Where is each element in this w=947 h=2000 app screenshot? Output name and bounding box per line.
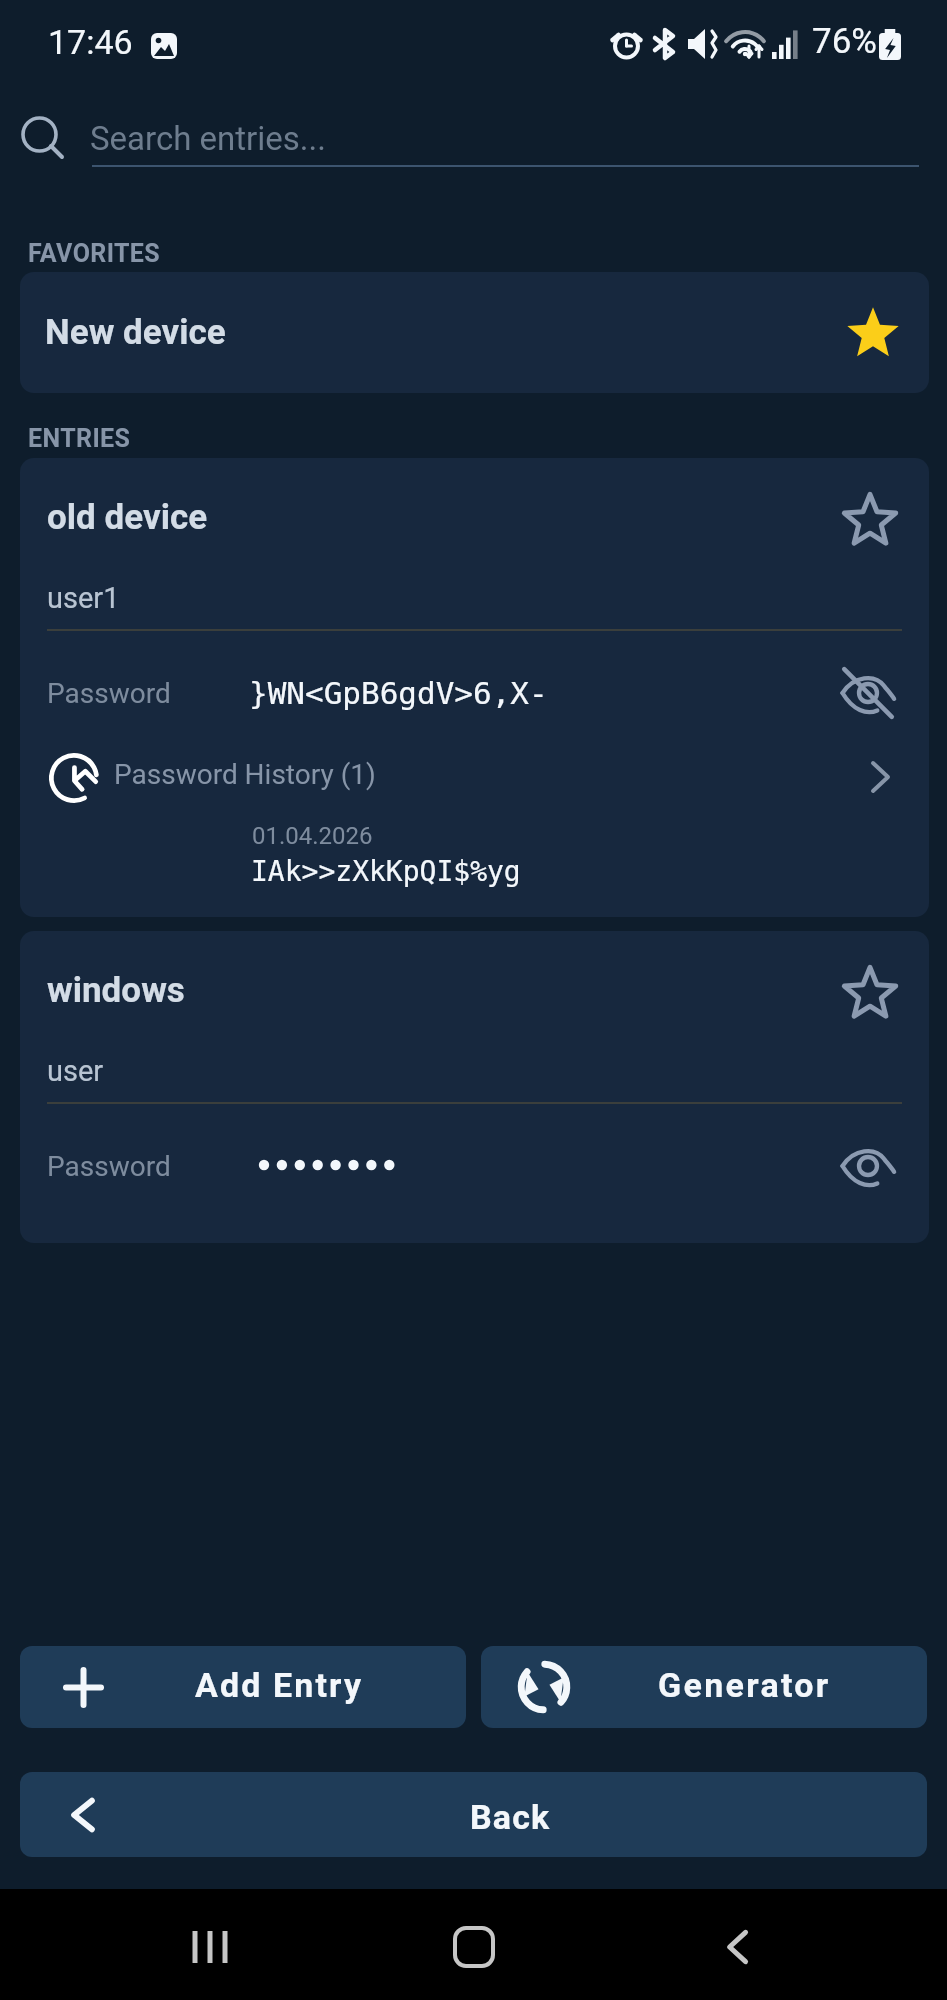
button[interactable]: New device [20, 272, 929, 393]
button[interactable]: Show password [827, 1125, 909, 1207]
staticText: }WN<GpB6gdV>6,X- [249, 675, 548, 711]
staticText: Password [47, 1150, 171, 1183]
button[interactable]: old device [20, 458, 929, 917]
button[interactable]: Add to favorites [835, 485, 905, 555]
button[interactable]: Add Entry [20, 1646, 466, 1728]
button[interactable]: Search entries [0, 96, 947, 180]
staticText: Password History (1) [114, 758, 376, 791]
staticText: old device [47, 497, 208, 538]
staticText: user [47, 1054, 104, 1088]
button[interactable]: Recent apps [162, 1899, 258, 1995]
staticText: 17:46 [48, 22, 133, 62]
staticText: FAVORITES [28, 239, 161, 268]
staticText: Add Entry [195, 1665, 364, 1705]
staticText: New device [45, 312, 226, 353]
button[interactable]: Remove from favorites [840, 300, 906, 366]
staticText: Back [470, 1797, 551, 1837]
staticText: windows [47, 970, 185, 1011]
staticText: Generator [658, 1665, 831, 1705]
staticText: IAk>>zXkKpQI$%yg [251, 855, 521, 888]
button[interactable]: Generator [481, 1646, 927, 1728]
button[interactable]: windows [20, 931, 929, 1243]
button[interactable]: Password History (1) [28, 735, 909, 811]
button[interactable]: Home [426, 1899, 522, 1995]
staticText: ENTRIES [28, 424, 131, 453]
staticText: user1 [47, 581, 120, 615]
button[interactable]: Back [690, 1899, 786, 1995]
staticText: Search entries... [90, 119, 326, 158]
button[interactable]: Back [20, 1772, 927, 1857]
staticText: 01.04.2026 [252, 822, 373, 850]
button[interactable]: Add to favorites [835, 958, 905, 1028]
staticText: Password [47, 677, 171, 710]
staticText: 76% [812, 21, 877, 62]
button[interactable]: Hide password [827, 652, 909, 734]
